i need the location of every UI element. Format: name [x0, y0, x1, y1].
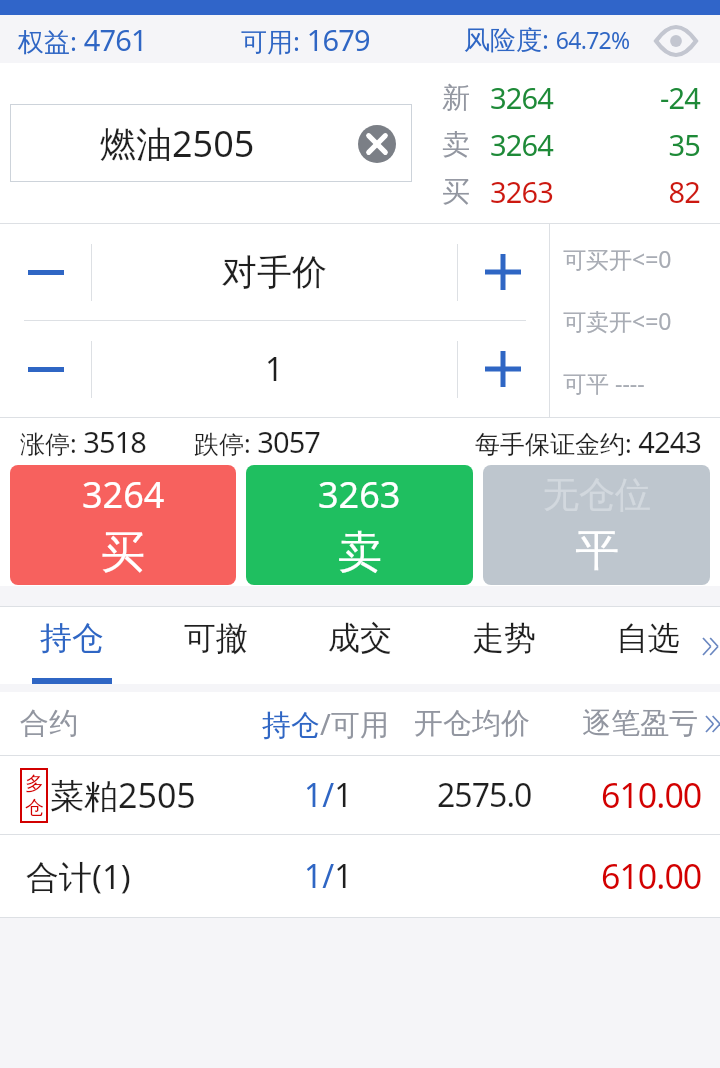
staticText: 3263	[490, 172, 553, 211]
button[interactable]: Clear contract	[358, 125, 396, 163]
button[interactable]: 燃油2505	[10, 104, 412, 182]
staticText: 仓	[25, 796, 44, 820]
button[interactable]: 自选	[576, 607, 720, 684]
staticText: 卖	[442, 127, 470, 162]
staticText: 1/1	[304, 854, 353, 898]
button[interactable]: 持仓	[0, 607, 144, 684]
staticText: 1/1	[304, 773, 353, 817]
staticText: 可卖开<=0	[563, 305, 672, 336]
staticText: 持仓	[40, 618, 104, 658]
button[interactable]: 无仓位	[483, 465, 710, 585]
staticText: 无仓位	[543, 472, 651, 517]
staticText: 多	[25, 772, 44, 796]
staticText: 每手保证金约: 4243	[475, 422, 702, 461]
staticText: 3263	[318, 470, 401, 519]
staticText: 3264	[490, 78, 553, 117]
staticText: 权益: 4761	[18, 20, 147, 59]
staticText: 开仓均价	[414, 705, 530, 742]
staticText: 持仓/可用	[262, 704, 389, 744]
staticText: 走势	[472, 618, 536, 658]
staticText: 可买开<=0	[563, 243, 672, 274]
staticText: 对手价	[222, 250, 327, 294]
staticText: 35	[668, 125, 700, 164]
button[interactable]: 3264	[10, 465, 236, 585]
staticText: 可用: 1679	[241, 20, 370, 59]
staticText: 跌停: 3057	[194, 422, 321, 461]
button[interactable]: More columns	[696, 712, 720, 736]
staticText: 买	[442, 174, 470, 209]
staticText: 自选	[616, 618, 680, 658]
button[interactable]: Increase	[457, 321, 549, 417]
staticText: 平	[575, 523, 619, 578]
staticText: 610.00	[601, 772, 702, 818]
staticText: 逐笔盈亏	[582, 705, 698, 742]
button[interactable]: 成交	[288, 607, 432, 684]
staticText: 成交	[328, 618, 392, 658]
staticText: 1	[265, 347, 284, 391]
staticText: 菜粕2505	[50, 772, 196, 818]
staticText: 3264	[82, 470, 165, 519]
staticText: 3264	[490, 125, 553, 164]
button[interactable]: Decrease	[0, 321, 91, 417]
staticText: 风险度: 64.72%	[464, 21, 630, 57]
staticText: 新	[442, 80, 470, 115]
button[interactable]: Increase	[457, 224, 549, 320]
staticText: 燃油2505	[100, 119, 255, 168]
staticText: 卖	[338, 525, 382, 580]
staticText: 涨停: 3518	[20, 422, 147, 461]
staticText: 2575.0	[437, 773, 532, 817]
button[interactable]: More tabs	[686, 630, 718, 662]
button[interactable]: 3263	[246, 465, 473, 585]
staticText: 610.00	[601, 853, 702, 899]
button[interactable]: Toggle balance visibility	[656, 19, 704, 63]
staticText: 82	[668, 172, 700, 211]
staticText: 买	[101, 525, 145, 580]
staticText: 合约	[20, 705, 78, 742]
staticText: -24	[660, 78, 700, 117]
staticText: 合计(1)	[26, 854, 131, 899]
button[interactable]: 走势	[432, 607, 576, 684]
staticText: 可平 ----	[563, 367, 645, 398]
button[interactable]: Decrease	[0, 224, 91, 320]
button[interactable]: 多	[0, 756, 720, 834]
button[interactable]: 可撤	[144, 607, 288, 684]
staticText: 可撤	[184, 618, 248, 658]
